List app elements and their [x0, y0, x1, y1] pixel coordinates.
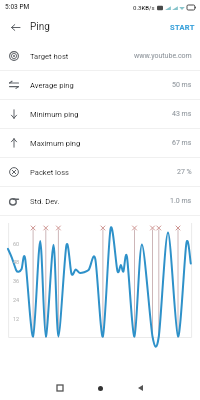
button[interactable]: START — [169, 21, 196, 34]
staticText: 24 — [13, 297, 20, 303]
button[interactable]: Std. Dev. — [0, 187, 200, 215]
button[interactable]: Packet loss — [0, 158, 200, 186]
staticText: 1.0 ms — [170, 197, 192, 205]
staticText: 50 ms — [172, 81, 192, 89]
button[interactable]: Average ping — [0, 71, 200, 99]
button[interactable]: Minimum ping — [0, 100, 200, 128]
staticText: 0.3KB/s — [133, 4, 155, 11]
button[interactable]: Recent apps — [52, 380, 68, 396]
staticText: Minimum ping — [30, 110, 79, 119]
staticText: START — [170, 23, 195, 32]
staticText: Packet loss — [30, 168, 70, 177]
staticText: 5:03 PM — [5, 3, 30, 11]
staticText: 43 ms — [172, 110, 192, 118]
staticText: Average ping — [30, 81, 74, 90]
staticText: 12 — [13, 316, 20, 322]
staticText: Std. Dev. — [30, 197, 60, 206]
staticText: Maximum ping — [30, 139, 81, 148]
button[interactable]: Target host — [0, 42, 200, 70]
staticText: 27 % — [177, 168, 192, 176]
staticText: 36 — [13, 278, 20, 284]
button[interactable]: Back — [132, 380, 148, 396]
button[interactable]: Maximum ping — [0, 129, 200, 157]
staticText: 60 — [13, 241, 20, 247]
button[interactable]: Back — [6, 18, 24, 36]
staticText: Target host — [30, 52, 69, 61]
staticText: Ping — [30, 21, 50, 33]
staticText: www.youtube.com — [134, 52, 192, 60]
staticText: 48 — [13, 259, 20, 265]
staticText: 67 ms — [172, 139, 192, 147]
button[interactable]: Home — [92, 380, 108, 396]
